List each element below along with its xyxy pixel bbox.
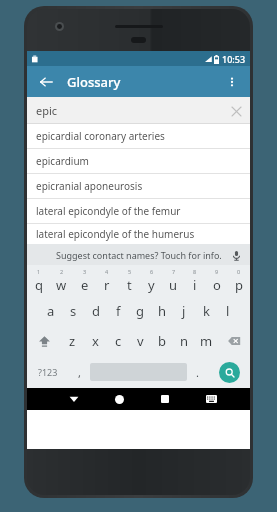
staticText: d	[92, 302, 100, 320]
staticText: lateral epicondyle of the humerus	[36, 227, 195, 241]
button[interactable]: Back	[51, 388, 96, 410]
button[interactable]: 8	[184, 265, 206, 296]
button[interactable]: epic	[27, 97, 250, 124]
button[interactable]: c	[107, 326, 129, 356]
staticText: n	[180, 332, 189, 350]
staticText: l	[226, 302, 230, 320]
staticText: p	[235, 276, 243, 294]
staticText: .	[196, 365, 199, 380]
staticText: r	[104, 276, 110, 294]
staticText: i	[193, 276, 197, 294]
button[interactable]: ?123	[27, 356, 69, 388]
button[interactable]: z	[61, 326, 84, 356]
button[interactable]: 4	[96, 265, 118, 296]
staticText: ?123	[38, 366, 58, 378]
button[interactable]: More options	[219, 69, 245, 95]
staticText: f	[116, 302, 121, 320]
button[interactable]: g	[129, 296, 151, 326]
button[interactable]: m	[195, 326, 217, 356]
button[interactable]: 5	[118, 265, 140, 296]
button[interactable]: a	[39, 296, 62, 326]
staticText: 2	[60, 268, 64, 275]
staticText: epicardial coronary arteries	[36, 129, 165, 143]
button[interactable]: 0	[228, 265, 250, 296]
staticText: 0	[237, 268, 241, 275]
button[interactable]: 9	[206, 265, 228, 296]
staticText: epicardium	[36, 154, 89, 168]
button[interactable]: 2	[50, 265, 73, 296]
button[interactable]: v	[129, 326, 151, 356]
staticText: 4	[105, 268, 109, 275]
staticText: k	[203, 302, 210, 320]
button[interactable]: epicardial coronary arteries	[27, 124, 250, 148]
staticText: 1	[37, 268, 41, 275]
button[interactable]: 7	[162, 265, 184, 296]
staticText: e	[81, 276, 89, 294]
staticText: g	[136, 302, 144, 320]
staticText: Glossary	[67, 73, 121, 91]
staticText: 9	[215, 268, 219, 275]
button[interactable]: Voice input	[227, 246, 245, 264]
staticText: ,	[78, 365, 81, 380]
button[interactable]: 6	[140, 265, 162, 296]
staticText: m	[200, 332, 213, 350]
staticText: s	[70, 302, 77, 320]
staticText: epicranial aponeurosis	[36, 179, 143, 193]
staticText: b	[158, 332, 166, 350]
staticText: 3	[83, 268, 87, 275]
staticText: c	[115, 332, 122, 350]
button[interactable]: Switch keyboard	[188, 388, 234, 410]
staticText: 10:53	[222, 53, 246, 65]
button[interactable]: d	[85, 296, 107, 326]
button[interactable]: epicranial aponeurosis	[27, 174, 250, 198]
button[interactable]: epicardium	[27, 149, 250, 173]
button[interactable]: x	[84, 326, 107, 356]
button[interactable]: Backspace	[217, 326, 250, 356]
button[interactable]: Recent apps	[142, 388, 188, 410]
button[interactable]: l	[217, 296, 239, 326]
staticText: z	[69, 332, 76, 350]
staticText: q	[35, 276, 43, 294]
button[interactable]: .	[187, 356, 208, 388]
button[interactable]: lateral epicondyle of the femur	[27, 199, 250, 223]
button[interactable]: lateral epicondyle of the humerus	[27, 224, 250, 244]
button[interactable]: Home	[96, 388, 142, 410]
button[interactable]: n	[173, 326, 195, 356]
staticText: v	[137, 332, 144, 350]
button[interactable]: f	[107, 296, 129, 326]
staticText: 7	[172, 268, 176, 275]
staticText: lateral epicondyle of the femur	[36, 204, 181, 218]
button[interactable]: Suggest contact names? Touch for info.	[27, 244, 250, 265]
staticText: 5	[128, 268, 132, 275]
button[interactable]: Shift	[27, 326, 61, 356]
button[interactable]: k	[195, 296, 217, 326]
staticText: 6	[150, 268, 154, 275]
button[interactable]: h	[151, 296, 173, 326]
button[interactable]: Back	[33, 69, 59, 95]
button[interactable]: ,	[69, 356, 90, 388]
button[interactable]: 1	[27, 265, 50, 296]
button[interactable]: s	[62, 296, 85, 326]
button[interactable]: Clear search	[225, 100, 247, 122]
staticText: Suggest contact names? Touch for info.	[56, 249, 222, 261]
staticText: y	[148, 276, 155, 294]
staticText: t	[127, 276, 132, 294]
button[interactable]: 3	[73, 265, 96, 296]
staticText: o	[213, 276, 221, 294]
button[interactable]: Search	[219, 362, 240, 383]
staticText: u	[169, 276, 178, 294]
staticText: j	[182, 302, 186, 320]
staticText: epic	[36, 103, 58, 118]
staticText: h	[158, 302, 167, 320]
button[interactable]: j	[173, 296, 195, 326]
staticText: a	[47, 302, 55, 320]
staticText: 8	[193, 268, 197, 275]
staticText: x	[92, 332, 99, 350]
staticText: w	[56, 276, 67, 294]
button[interactable]: b	[151, 326, 173, 356]
